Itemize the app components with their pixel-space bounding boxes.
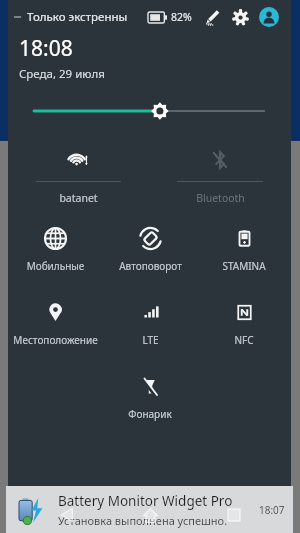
button[interactable]: Recents: [217, 498, 251, 532]
button[interactable]: STAMINA: [197, 218, 291, 278]
button[interactable]: Back: [50, 498, 84, 532]
staticText: Установка выполнена успешно.: [58, 513, 228, 528]
staticText: 18:07: [259, 503, 285, 517]
staticText: Battery Monitor Widget Pro: [58, 492, 233, 510]
staticText: 82%: [171, 10, 192, 24]
button[interactable]: Bluetooth: [149, 138, 291, 206]
staticText: NFC: [234, 333, 254, 347]
staticText: Местоположение: [13, 333, 98, 347]
button[interactable]: Brightness: [8, 94, 291, 128]
staticText: Только экстренны: [27, 9, 128, 25]
button[interactable]: batanet: [8, 138, 149, 206]
button[interactable]: Home: [133, 498, 167, 532]
staticText: STAMINA: [222, 259, 266, 273]
button[interactable]: Battery Monitor Widget Pro: [6, 486, 293, 533]
staticText: Автоповорот: [119, 259, 182, 273]
staticText: Фонарик: [128, 407, 172, 421]
button[interactable]: User profile: [257, 5, 281, 29]
staticText: 18:08: [19, 34, 73, 63]
button[interactable]: Edit: [201, 6, 223, 28]
button[interactable]: NFC: [197, 292, 291, 352]
button[interactable]: Мобильные данные: [8, 218, 103, 278]
button[interactable]: LTE: [103, 292, 197, 352]
button[interactable]: Settings: [229, 6, 251, 28]
staticText: Bluetooth: [196, 191, 245, 205]
staticText: Мобильные данные: [8, 259, 103, 273]
staticText: batanet: [59, 191, 98, 205]
staticText: Среда, 29 июля: [19, 66, 105, 82]
button[interactable]: Фонарик: [103, 366, 197, 426]
button[interactable]: Автоповорот: [103, 218, 197, 278]
staticText: LTE: [142, 333, 159, 347]
button[interactable]: Местоположение: [8, 292, 103, 352]
